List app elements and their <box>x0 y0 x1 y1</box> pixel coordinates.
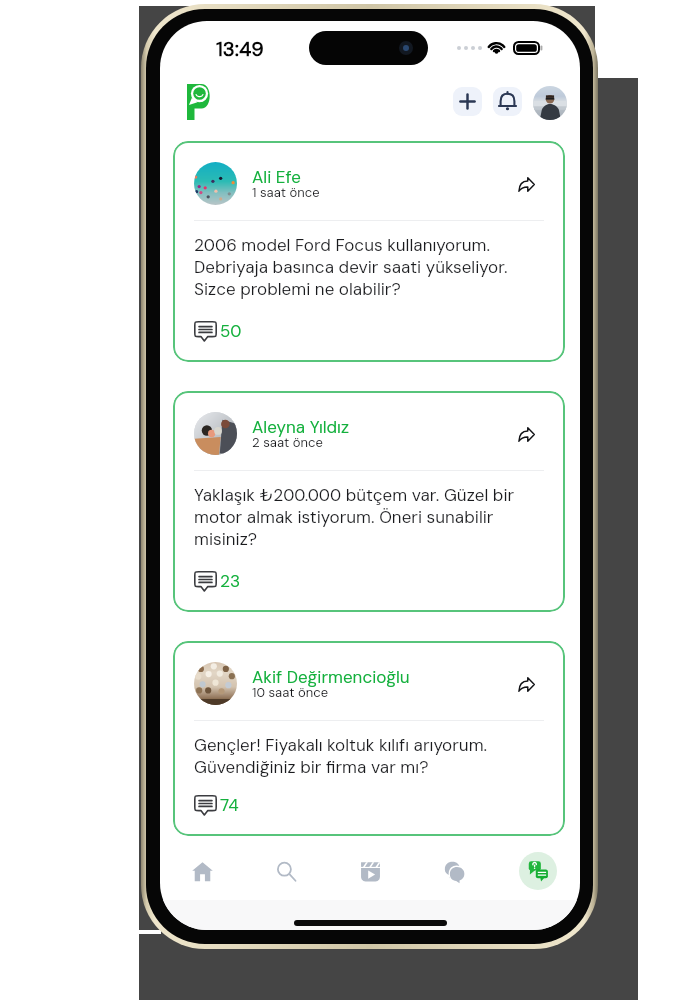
staticText: 23 <box>220 570 241 592</box>
staticText: Sizce problemi ne olabilir? <box>194 278 401 300</box>
button[interactable]: Profile <box>533 86 567 120</box>
staticText: Aleyna Yıldız <box>252 416 350 438</box>
staticText: Ali Efe <box>252 166 301 188</box>
button[interactable]: Videos <box>328 861 412 882</box>
button[interactable]: Ali Efe <box>173 141 565 362</box>
staticText: misiniz? <box>194 528 258 550</box>
button[interactable]: Notifications <box>493 87 522 116</box>
button[interactable]: Share <box>509 665 543 699</box>
button[interactable]: Search <box>244 861 328 882</box>
staticText: 2 saat önce <box>252 434 323 451</box>
staticText: Güvendiğiniz bir firma var mı? <box>194 756 429 778</box>
staticText: 1 saat önce <box>252 184 320 201</box>
button[interactable]: Akif Değirmencioğlu <box>173 641 565 836</box>
staticText: motor almak istiyorum. Öneri sunabilir <box>194 506 494 528</box>
button[interactable]: Add <box>453 87 482 116</box>
staticText: Gençler! Fiyakalı koltuk kılıfı arıyorum… <box>194 734 488 756</box>
button[interactable]: Share <box>509 415 543 449</box>
button[interactable]: Ask question <box>519 852 557 890</box>
staticText: Debriyaja basınca devir saati yükseliyor… <box>194 256 508 278</box>
staticText: 2006 model Ford Focus kullanıyorum. <box>194 234 491 256</box>
button[interactable]: Home logo <box>179 76 219 116</box>
button[interactable]: Home <box>160 861 244 882</box>
button[interactable]: Aleyna Yıldız <box>173 391 565 612</box>
staticText: Yaklaşık ₺200.000 bütçem var. Güzel bir <box>194 484 515 506</box>
staticText: 74 <box>220 794 239 816</box>
staticText: Akif Değirmencioğlu <box>252 666 410 688</box>
staticText: 50 <box>220 320 242 342</box>
button[interactable]: Share <box>509 165 543 199</box>
button[interactable]: Messages <box>412 861 496 882</box>
staticText: 13:49 <box>216 36 264 62</box>
staticText: 10 saat önce <box>252 684 329 701</box>
